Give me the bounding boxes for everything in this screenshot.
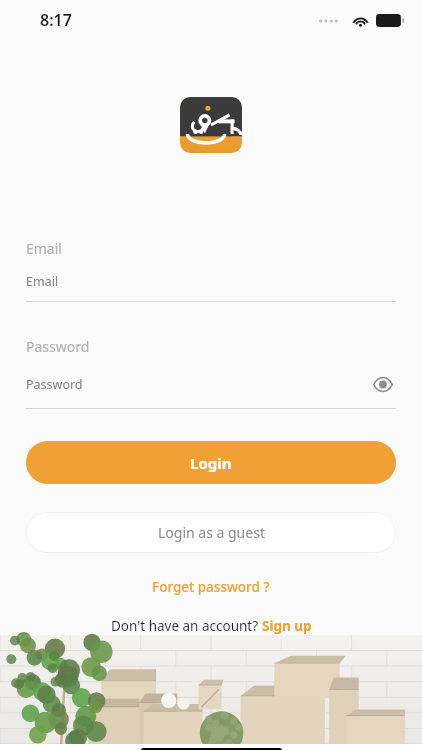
- button[interactable]: Login as a guest: [26, 512, 396, 553]
- staticText: Email: [26, 273, 396, 290]
- button[interactable]: Login: [26, 441, 396, 484]
- staticText: Password: [26, 337, 90, 356]
- staticText: Sign up: [262, 617, 312, 635]
- button[interactable]: Password: [26, 337, 396, 409]
- staticText: Login as a guest: [158, 523, 265, 542]
- button[interactable]: Sign up: [262, 617, 312, 635]
- button[interactable]: Forget password ?: [140, 573, 282, 601]
- staticText: Don't have an account?: [111, 617, 262, 635]
- other: App logo: [180, 97, 242, 153]
- staticText: Password: [26, 376, 370, 393]
- staticText: Login: [190, 453, 232, 473]
- staticText: Email: [26, 239, 62, 258]
- staticText: 8:17: [40, 9, 72, 31]
- button[interactable]: Email: [26, 239, 396, 302]
- staticText: Forget password ?: [152, 578, 270, 596]
- button[interactable]: Show password: [370, 371, 396, 397]
